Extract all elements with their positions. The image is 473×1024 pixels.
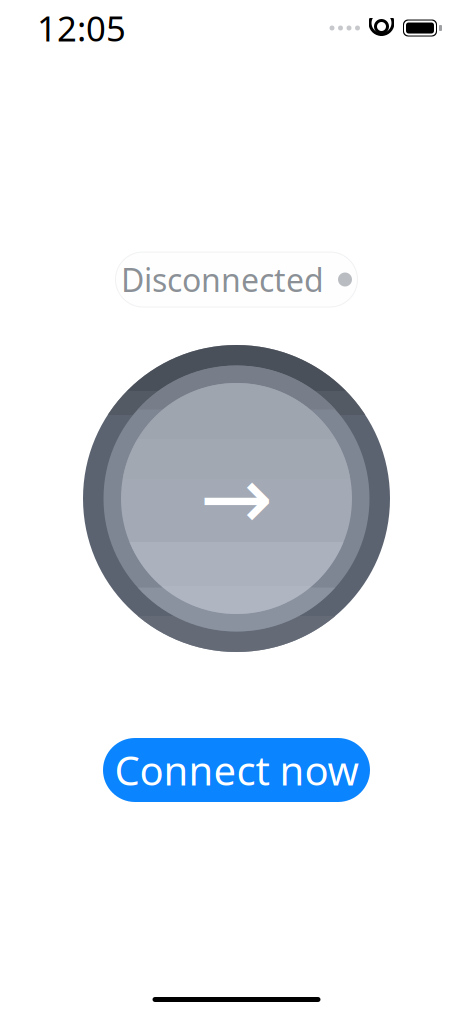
staticText: Connect now <box>114 743 358 796</box>
button[interactable]: Connect <box>83 345 390 652</box>
button[interactable]: Disconnected <box>115 252 357 307</box>
staticText: Disconnected <box>121 258 324 301</box>
staticText: → <box>199 449 273 548</box>
button[interactable]: Connect now <box>103 738 370 802</box>
staticText: 12:05 <box>37 5 126 51</box>
